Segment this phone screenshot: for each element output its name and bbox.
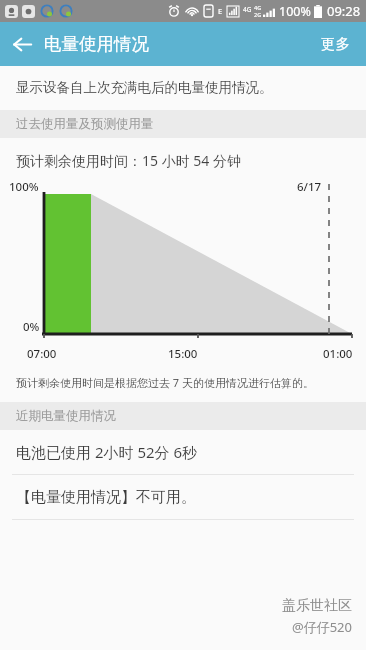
staticText: 2G — [254, 11, 262, 18]
staticText: 更多 — [321, 35, 350, 53]
staticText: 【电量使用情况】不可用。 — [16, 488, 196, 507]
staticText: 07:00 — [27, 346, 57, 362]
staticText: 4G — [254, 4, 262, 11]
staticText: 100% — [279, 3, 311, 20]
button[interactable]: 【电量使用情况】不可用。 — [0, 475, 366, 519]
staticText: 盖乐世社区 — [282, 597, 352, 615]
staticText: @仔仔520 — [292, 618, 352, 636]
staticText: 100% — [9, 179, 39, 195]
staticText: 显示设备自上次充满电后的电量使用情况。 — [16, 79, 273, 96]
staticText: 预计剩余使用时间：15 小时 54 分钟 — [16, 151, 241, 170]
button[interactable]: 电池已使用 2小时 52分 6秒 — [0, 430, 366, 474]
staticText: E — [218, 6, 223, 16]
staticText: 电量使用情况 — [44, 33, 149, 55]
staticText: 4G — [243, 5, 252, 14]
staticText: 过去使用量及预测使用量 — [16, 116, 154, 132]
staticText: 预计剩余使用时间是根据您过去 7 天的使用情况进行估算的。 — [16, 375, 315, 390]
staticText: 0% — [23, 319, 40, 335]
staticText: 近期电量使用情况 — [16, 408, 116, 424]
staticText: 09:28 — [327, 2, 361, 20]
staticText: 电池已使用 2小时 52分 6秒 — [16, 442, 198, 462]
staticText: 6/17 — [297, 179, 322, 195]
staticText: 01:00 — [323, 346, 353, 362]
button[interactable]: Back — [0, 22, 44, 66]
button[interactable]: 更多 — [305, 23, 366, 65]
staticText: 15:00 — [168, 346, 198, 362]
